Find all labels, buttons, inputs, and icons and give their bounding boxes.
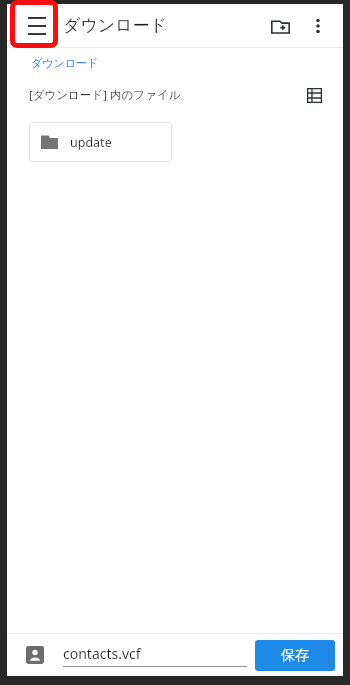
button[interactable]: ダウンロード xyxy=(29,54,101,72)
button[interactable]: contacts.vcf xyxy=(63,634,247,676)
staticText: 保存 xyxy=(281,647,309,665)
button[interactable]: 保存 xyxy=(255,640,335,671)
staticText: update xyxy=(70,134,112,151)
button[interactable]: Open navigation menu xyxy=(19,8,55,44)
button[interactable]: Change view xyxy=(299,80,329,110)
other: Contact file xyxy=(25,645,45,665)
button[interactable]: More options xyxy=(299,7,337,45)
button[interactable]: Create new folder xyxy=(261,7,299,45)
staticText: contacts.vcf xyxy=(63,644,141,663)
button[interactable]: update xyxy=(29,122,172,162)
staticText: ダウンロード xyxy=(63,15,167,36)
staticText: ダウンロード xyxy=(31,56,99,70)
staticText: [ダウンロード] 内のファイル xyxy=(29,87,181,103)
